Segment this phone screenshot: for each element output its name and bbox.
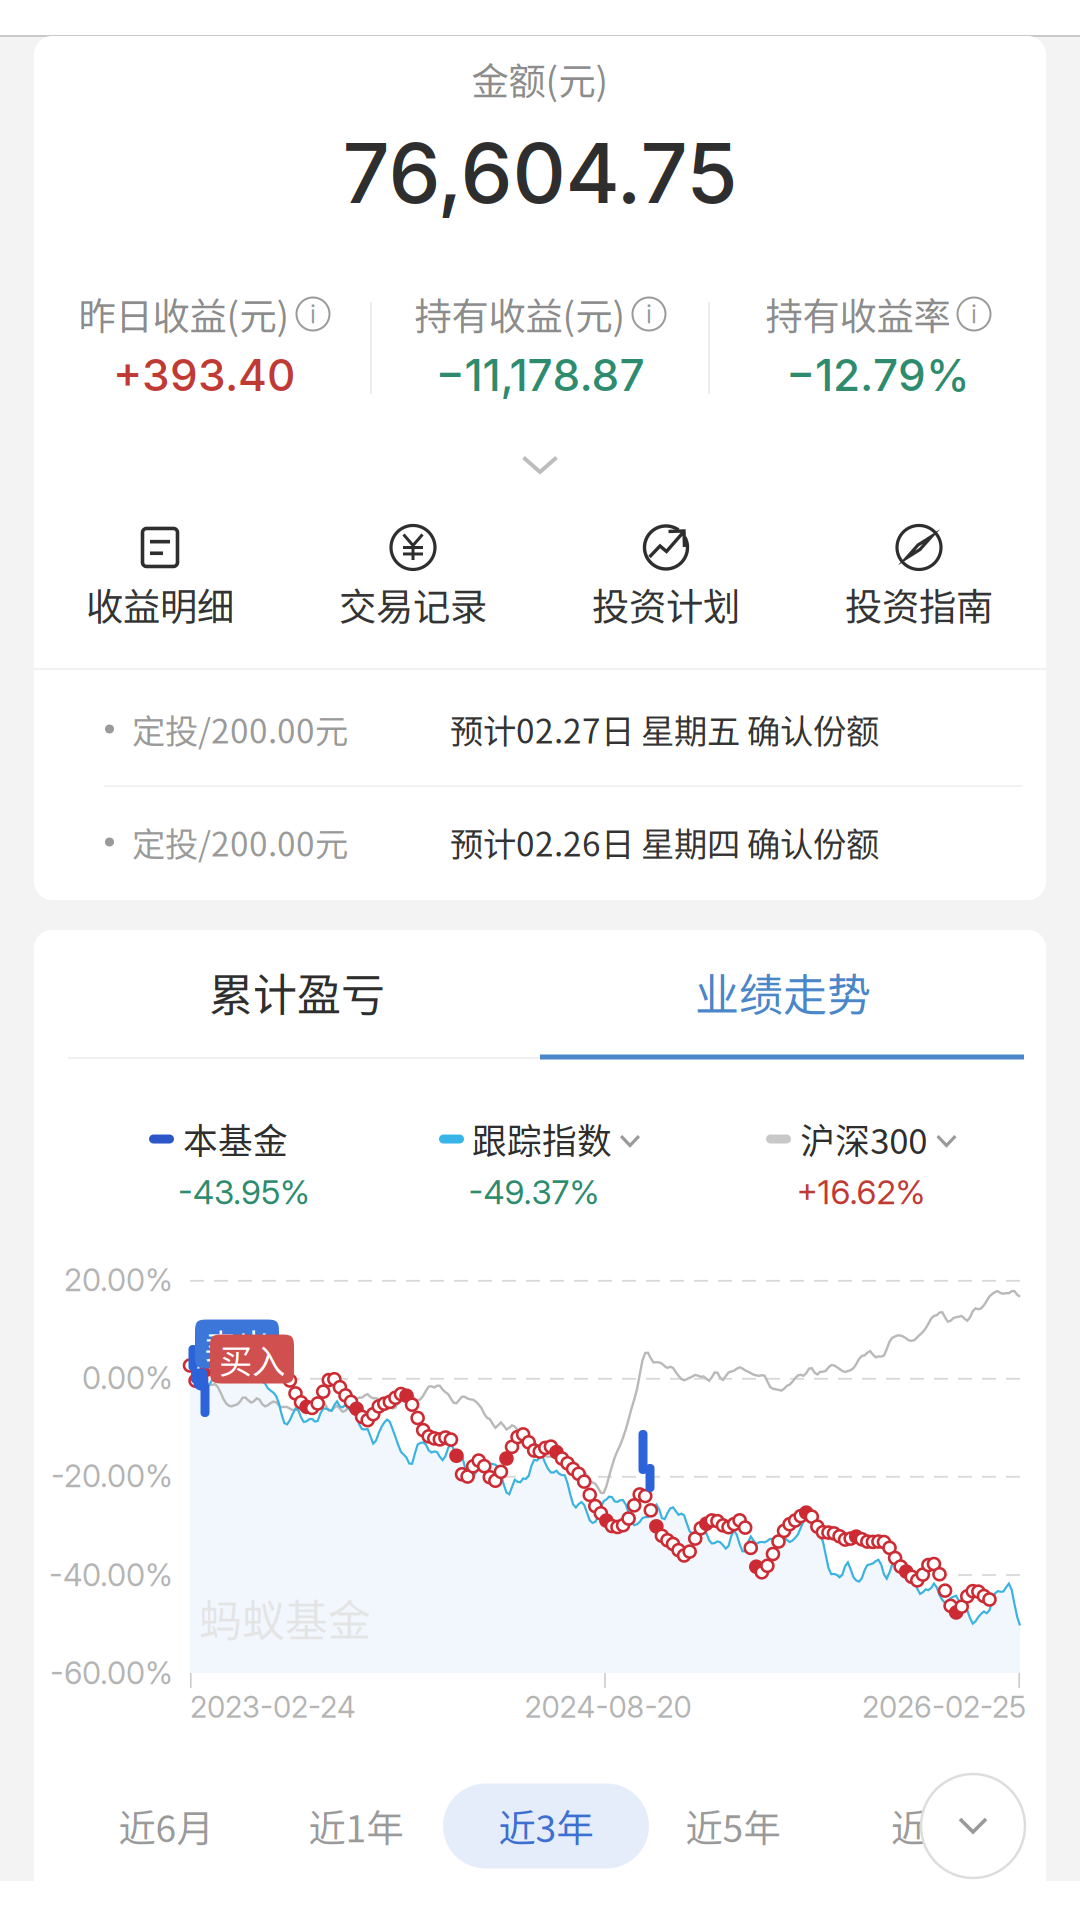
staticText: 投资计划 xyxy=(592,577,740,632)
staticText: 预计02.26日 星期四 确认份额 xyxy=(450,818,879,866)
staticText: 持有收益(元) xyxy=(414,287,625,341)
staticText: 买入 xyxy=(219,1335,285,1383)
staticText: 金额(元) xyxy=(471,52,608,106)
staticText: 2026-02-25 xyxy=(862,1689,1026,1725)
staticText: 预计02.27日 星期五 确认份额 xyxy=(450,705,879,753)
staticText: 近3年 xyxy=(498,1799,593,1853)
staticText: 昨日收益(元) xyxy=(78,287,289,341)
button[interactable]: 近1年 xyxy=(253,1783,459,1868)
staticText: 定投/200.00元 xyxy=(132,818,348,866)
staticText: 0.00% xyxy=(82,1359,173,1396)
staticText: 近6月 xyxy=(118,1799,213,1853)
button[interactable]: 累计盈亏 xyxy=(54,928,540,1056)
staticText: 持有收益率 xyxy=(765,287,950,341)
staticText: +393.40 xyxy=(113,348,295,402)
staticText: -49.37% xyxy=(468,1172,599,1212)
staticText: 76,604.75 xyxy=(342,123,737,223)
staticText: 投资指南 xyxy=(845,577,993,632)
button[interactable]: 近1 xyxy=(817,1783,1023,1868)
button[interactable]: 投资指南 xyxy=(792,527,1045,628)
button[interactable]: 跟踪指数 xyxy=(34,930,1046,1905)
staticText: i xyxy=(971,299,977,329)
staticText: 业绩走势 xyxy=(695,960,871,1024)
staticText: -40.00% xyxy=(49,1556,173,1593)
button[interactable]: 沪深300 xyxy=(34,930,1046,1905)
staticText: 本基金 xyxy=(183,1114,288,1164)
staticText: i xyxy=(646,299,652,329)
staticText: -43.95% xyxy=(178,1172,310,1212)
button[interactable]: 业绩走势 xyxy=(540,928,1026,1056)
button[interactable]: 展开图表 xyxy=(921,1774,1025,1878)
staticText: 收益明细 xyxy=(86,577,234,632)
staticText: +16.62% xyxy=(796,1172,925,1212)
staticText: 近1年 xyxy=(308,1799,403,1853)
staticText: 2024-08-20 xyxy=(524,1689,691,1725)
staticText: -60.00% xyxy=(50,1654,173,1691)
button[interactable]: 近3年 xyxy=(443,1783,649,1868)
staticText: −12.79% xyxy=(786,348,970,402)
staticText: i xyxy=(310,299,316,329)
staticText: −11,178.87 xyxy=(435,348,644,402)
button[interactable]: 本基金 xyxy=(34,930,1046,1905)
staticText: 近1 xyxy=(891,1799,949,1853)
staticText: 跟踪指数 xyxy=(472,1114,612,1164)
staticText: 定投/200.00元 xyxy=(132,705,348,753)
button[interactable]: 展开 xyxy=(470,430,610,500)
button[interactable]: 交易记录 xyxy=(286,527,539,628)
button[interactable]: 定投/200.00元 xyxy=(34,671,1046,787)
button[interactable]: 近6月 xyxy=(63,1783,269,1868)
staticText: -20.00% xyxy=(51,1457,173,1494)
button[interactable]: 投资计划 xyxy=(539,527,792,628)
staticText: 2023-02-24 xyxy=(190,1689,356,1725)
staticText: 沪深300 xyxy=(800,1114,927,1164)
staticText: 近5年 xyxy=(685,1799,780,1853)
staticText: 20.00% xyxy=(64,1261,173,1298)
staticText: 蚂蚁基金 xyxy=(199,1587,371,1649)
staticText: 累计盈亏 xyxy=(209,960,385,1024)
staticText: 卖出 xyxy=(204,1320,270,1368)
button[interactable]: 收益明细 xyxy=(33,527,286,628)
button[interactable]: 近5年 xyxy=(630,1783,836,1868)
button[interactable]: 定投/200.00元 xyxy=(34,784,1046,900)
staticText: 交易记录 xyxy=(339,577,487,632)
